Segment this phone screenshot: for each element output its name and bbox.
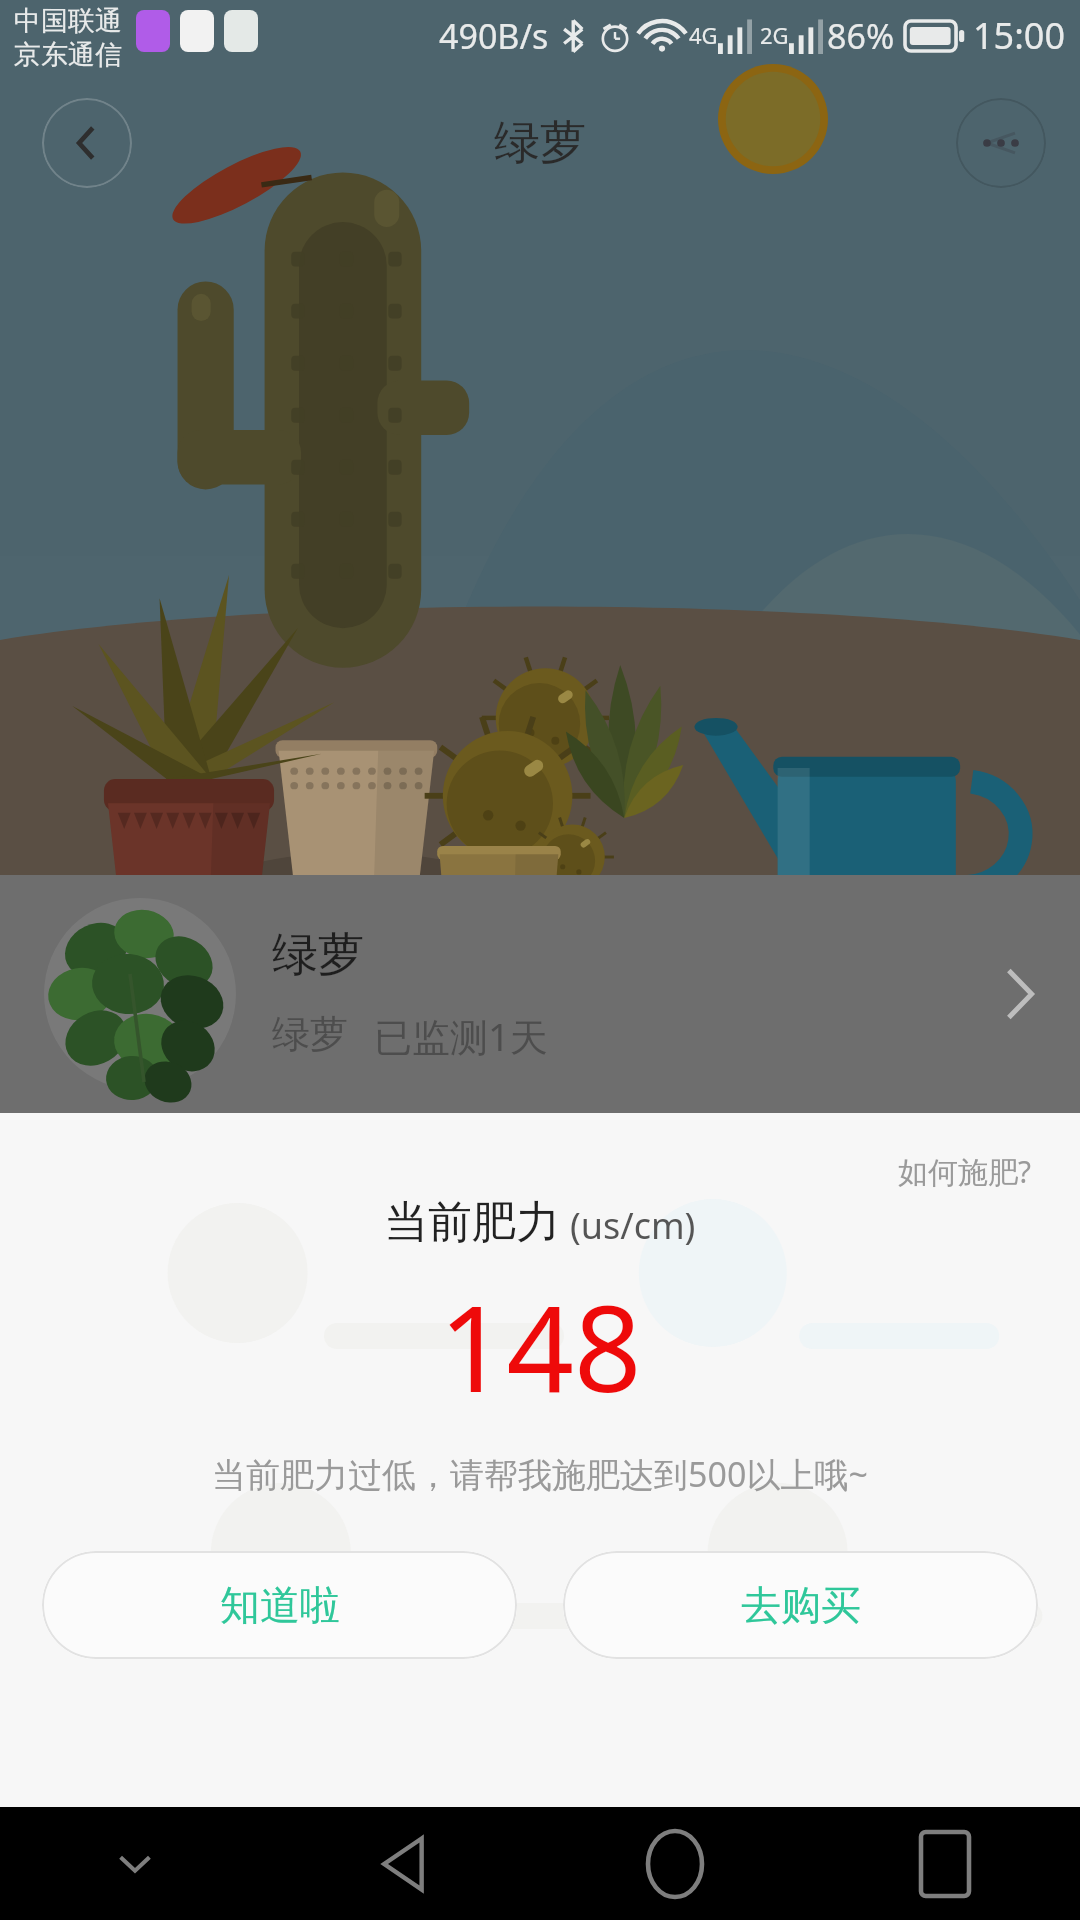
staticText: 去购买 — [741, 1580, 861, 1630]
staticText: 绿萝 — [272, 1010, 348, 1058]
staticText: 当前肥力过低，请帮我施肥达到500以上哦~ — [212, 1451, 868, 1497]
staticText: 知道啦 — [220, 1580, 340, 1630]
staticText: 86% — [827, 13, 895, 59]
button[interactable]: More options — [956, 98, 1046, 188]
staticText: 绿萝 — [272, 926, 364, 984]
staticText: 已监测1天 — [374, 1010, 548, 1062]
staticText: 当前肥力 — [384, 1195, 560, 1250]
staticText: 15:00 — [973, 11, 1066, 60]
staticText: 4G — [689, 20, 718, 50]
button[interactable]: 知道啦 — [42, 1551, 517, 1659]
staticText: 中国联通 — [14, 4, 122, 38]
staticText: 490B/s — [439, 13, 549, 59]
staticText: 如何施肥? — [898, 1151, 1032, 1192]
button[interactable]: Back — [270, 1807, 540, 1920]
staticText: 京东通信 — [14, 38, 122, 70]
staticText: 绿萝 — [494, 114, 586, 172]
staticText: 148 — [439, 1266, 642, 1427]
button[interactable]: Share — [718, 64, 898, 174]
button[interactable]: 绿萝 — [0, 875, 1080, 1113]
button[interactable]: Home — [540, 1807, 810, 1920]
button[interactable]: Hide navigation bar — [0, 1807, 270, 1920]
button[interactable]: Back — [42, 98, 132, 188]
button[interactable]: Recent apps — [810, 1807, 1080, 1920]
staticText: (us/cm) — [570, 1201, 696, 1250]
button[interactable]: 如何施肥? — [890, 1145, 1040, 1198]
staticText: 2G — [760, 20, 789, 50]
button[interactable]: 去购买 — [563, 1551, 1038, 1659]
